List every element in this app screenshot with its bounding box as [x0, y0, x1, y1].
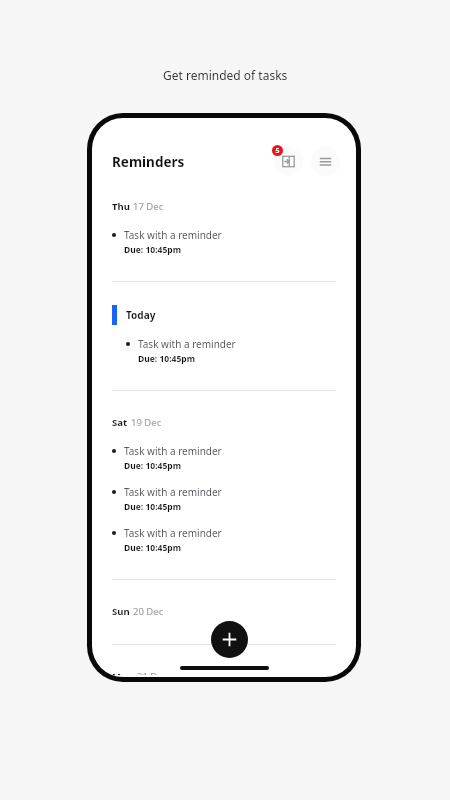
staticText: Due: 10:45pm	[124, 501, 181, 513]
staticText: Task with a reminder	[124, 228, 222, 242]
button[interactable]: Today	[92, 305, 356, 325]
button[interactable]: Task with a reminder	[92, 485, 356, 513]
button[interactable]: Task with a reminder	[92, 526, 356, 554]
staticText: Sat	[112, 416, 128, 429]
staticText: Thu	[112, 200, 130, 213]
button[interactable]: Sat	[92, 414, 356, 431]
button[interactable]: Menu	[311, 147, 340, 176]
staticText: 20 Dec	[133, 605, 164, 618]
staticText: Task with a reminder	[124, 526, 222, 540]
button[interactable]: Mon	[92, 668, 356, 677]
staticText: Due: 10:45pm	[124, 460, 181, 472]
staticText: Task with a reminder	[124, 444, 222, 458]
button[interactable]: Task with a reminder	[92, 228, 356, 256]
staticText: Due: 10:45pm	[124, 244, 181, 256]
staticText: 17 Dec	[133, 200, 164, 213]
staticText: Task with a reminder	[124, 485, 222, 499]
staticText: Due: 10:45pm	[138, 353, 195, 365]
staticText: Get reminded of tasks	[163, 67, 288, 83]
staticText: Sun	[112, 605, 130, 618]
button[interactable]: Archive	[274, 147, 303, 176]
staticText: 5	[275, 146, 280, 156]
button[interactable]: Add reminder	[211, 621, 248, 658]
button[interactable]: Task with a reminder	[92, 444, 356, 472]
button[interactable]: Sun	[92, 603, 356, 620]
staticText: Today	[126, 308, 156, 322]
staticText: Due: 10:45pm	[124, 542, 181, 554]
button[interactable]: Task with a reminder	[92, 337, 356, 365]
staticText: Task with a reminder	[138, 337, 236, 351]
staticText: Reminders	[112, 153, 185, 171]
staticText: 19 Dec	[131, 416, 162, 429]
button[interactable]: Thu	[92, 198, 356, 215]
staticText: Mon	[112, 670, 134, 675]
staticText: 21 Dec	[137, 670, 168, 675]
